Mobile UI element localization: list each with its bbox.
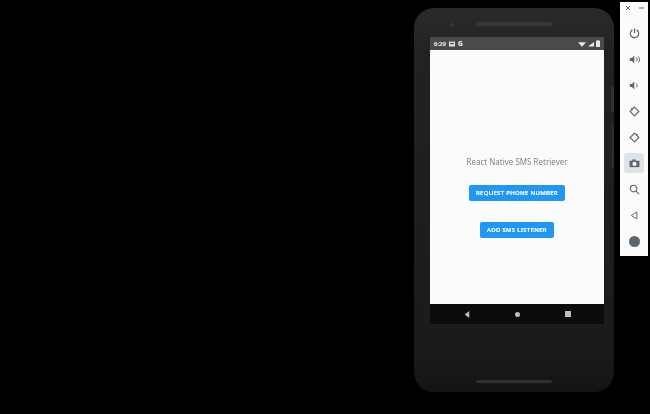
- button[interactable]: Volume down: [624, 75, 644, 95]
- button[interactable]: Home: [503, 304, 531, 324]
- button[interactable]: Minimize: [636, 3, 646, 13]
- staticText: 6:29: [434, 40, 446, 48]
- button[interactable]: Rotate right: [624, 127, 644, 147]
- button[interactable]: Zoom: [624, 179, 644, 199]
- button[interactable]: Close: [623, 3, 633, 13]
- staticText: React Native SMS Retriever: [466, 156, 568, 167]
- button[interactable]: Back: [453, 304, 481, 324]
- staticText: G: [458, 39, 463, 48]
- staticText: REQUEST PHONE NUMBER: [476, 189, 558, 197]
- button[interactable]: REQUEST PHONE NUMBER: [469, 185, 565, 201]
- button[interactable]: Power: [624, 23, 644, 43]
- button[interactable]: Back: [624, 205, 644, 225]
- button[interactable]: Recent apps: [554, 304, 582, 324]
- button[interactable]: Rotate left: [624, 101, 644, 121]
- staticText: ADD SMS LISTENER: [487, 226, 547, 234]
- button[interactable]: Volume up: [624, 49, 644, 69]
- button[interactable]: Home: [624, 231, 644, 251]
- button[interactable]: ADD SMS LISTENER: [480, 222, 554, 238]
- button[interactable]: Screenshot: [624, 153, 644, 173]
